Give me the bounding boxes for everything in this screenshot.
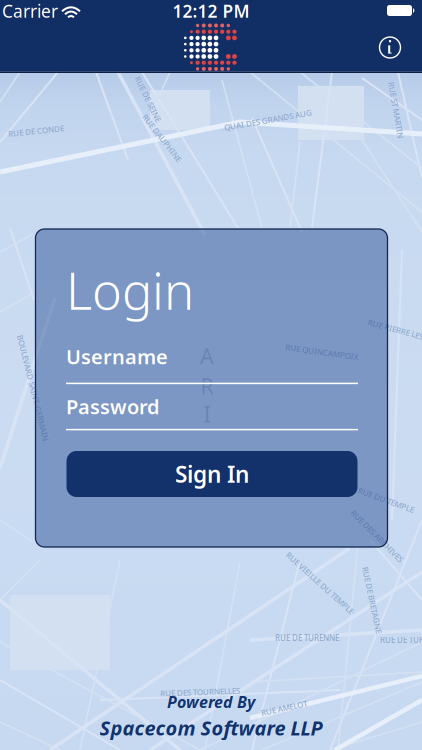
staticText: QUAI DES GRANDS AUG <box>223 115 312 125</box>
staticText: I <box>203 400 210 428</box>
staticText: Spacecom Software LLP <box>99 714 322 741</box>
staticText: Carrier <box>2 0 58 22</box>
staticText: Sign In <box>175 459 249 489</box>
staticText: RUE DE CONDE <box>8 126 64 136</box>
staticText: RUE DE BRETAGNE <box>338 595 406 605</box>
button[interactable]: Username <box>66 347 358 384</box>
staticText: RUE DE SEINE <box>123 94 173 104</box>
staticText: RUE DAUPHINE <box>133 133 191 143</box>
staticText: 12:12 PM <box>172 0 249 22</box>
staticText: RUE DE TURENNE <box>275 633 339 643</box>
button[interactable]: Sign In <box>66 451 357 497</box>
staticText: A <box>200 342 214 370</box>
button[interactable]: Password <box>66 397 358 431</box>
staticText: RUE PIERRE LESC <box>367 325 422 335</box>
staticText: RUE DE TURENNE <box>380 635 422 645</box>
staticText: RUE AMELOT <box>260 703 307 713</box>
staticText: RUE DES ARCHIVES <box>342 531 412 541</box>
staticText: BOULEVARD SAINT-GERMAIN <box>0 383 87 393</box>
staticText: Password <box>66 393 160 420</box>
staticText: R <box>200 372 213 400</box>
button[interactable]: Info <box>0 0 422 73</box>
staticText: RUE QUINCAMPOIX <box>285 347 359 357</box>
staticText: RUE DES TOURNELLES <box>160 687 240 697</box>
staticText: RUE DU TEMPLE <box>356 495 415 505</box>
staticText: Powered By <box>167 691 255 712</box>
staticText: Username <box>66 343 168 370</box>
staticText: RUE ST MARTIN <box>367 105 422 115</box>
staticText: Login <box>66 256 194 324</box>
staticText: RUE VIEILLE DU TEMPLE <box>276 578 364 588</box>
